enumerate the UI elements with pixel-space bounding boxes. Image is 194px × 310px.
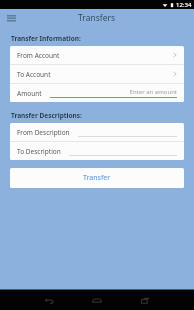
button[interactable]: To Account [10, 65, 184, 83]
button[interactable]: Recent apps [131, 290, 159, 310]
staticText: From Account [17, 51, 60, 60]
button[interactable]: From Account [10, 46, 184, 64]
staticText: Transfers [78, 12, 116, 24]
staticText: Transfer Descriptions: [11, 111, 82, 120]
staticText: 12:34 [176, 1, 192, 9]
button[interactable]: Transfer [10, 168, 184, 188]
staticText: Amount [17, 89, 42, 98]
staticText: To Account [17, 70, 51, 79]
staticText: To Description [17, 147, 61, 156]
button[interactable]: From Description [10, 123, 184, 141]
button[interactable]: Home [83, 290, 111, 310]
staticText: Enter an amount [50, 88, 177, 96]
button[interactable]: Back [35, 290, 63, 310]
staticText: Transfer Information: [11, 34, 81, 43]
staticText: From Description [17, 128, 70, 137]
button[interactable]: To Description [10, 142, 184, 160]
button[interactable]: Open navigation menu [3, 10, 20, 27]
staticText: Transfer [83, 173, 111, 183]
button[interactable]: Amount [10, 84, 184, 102]
